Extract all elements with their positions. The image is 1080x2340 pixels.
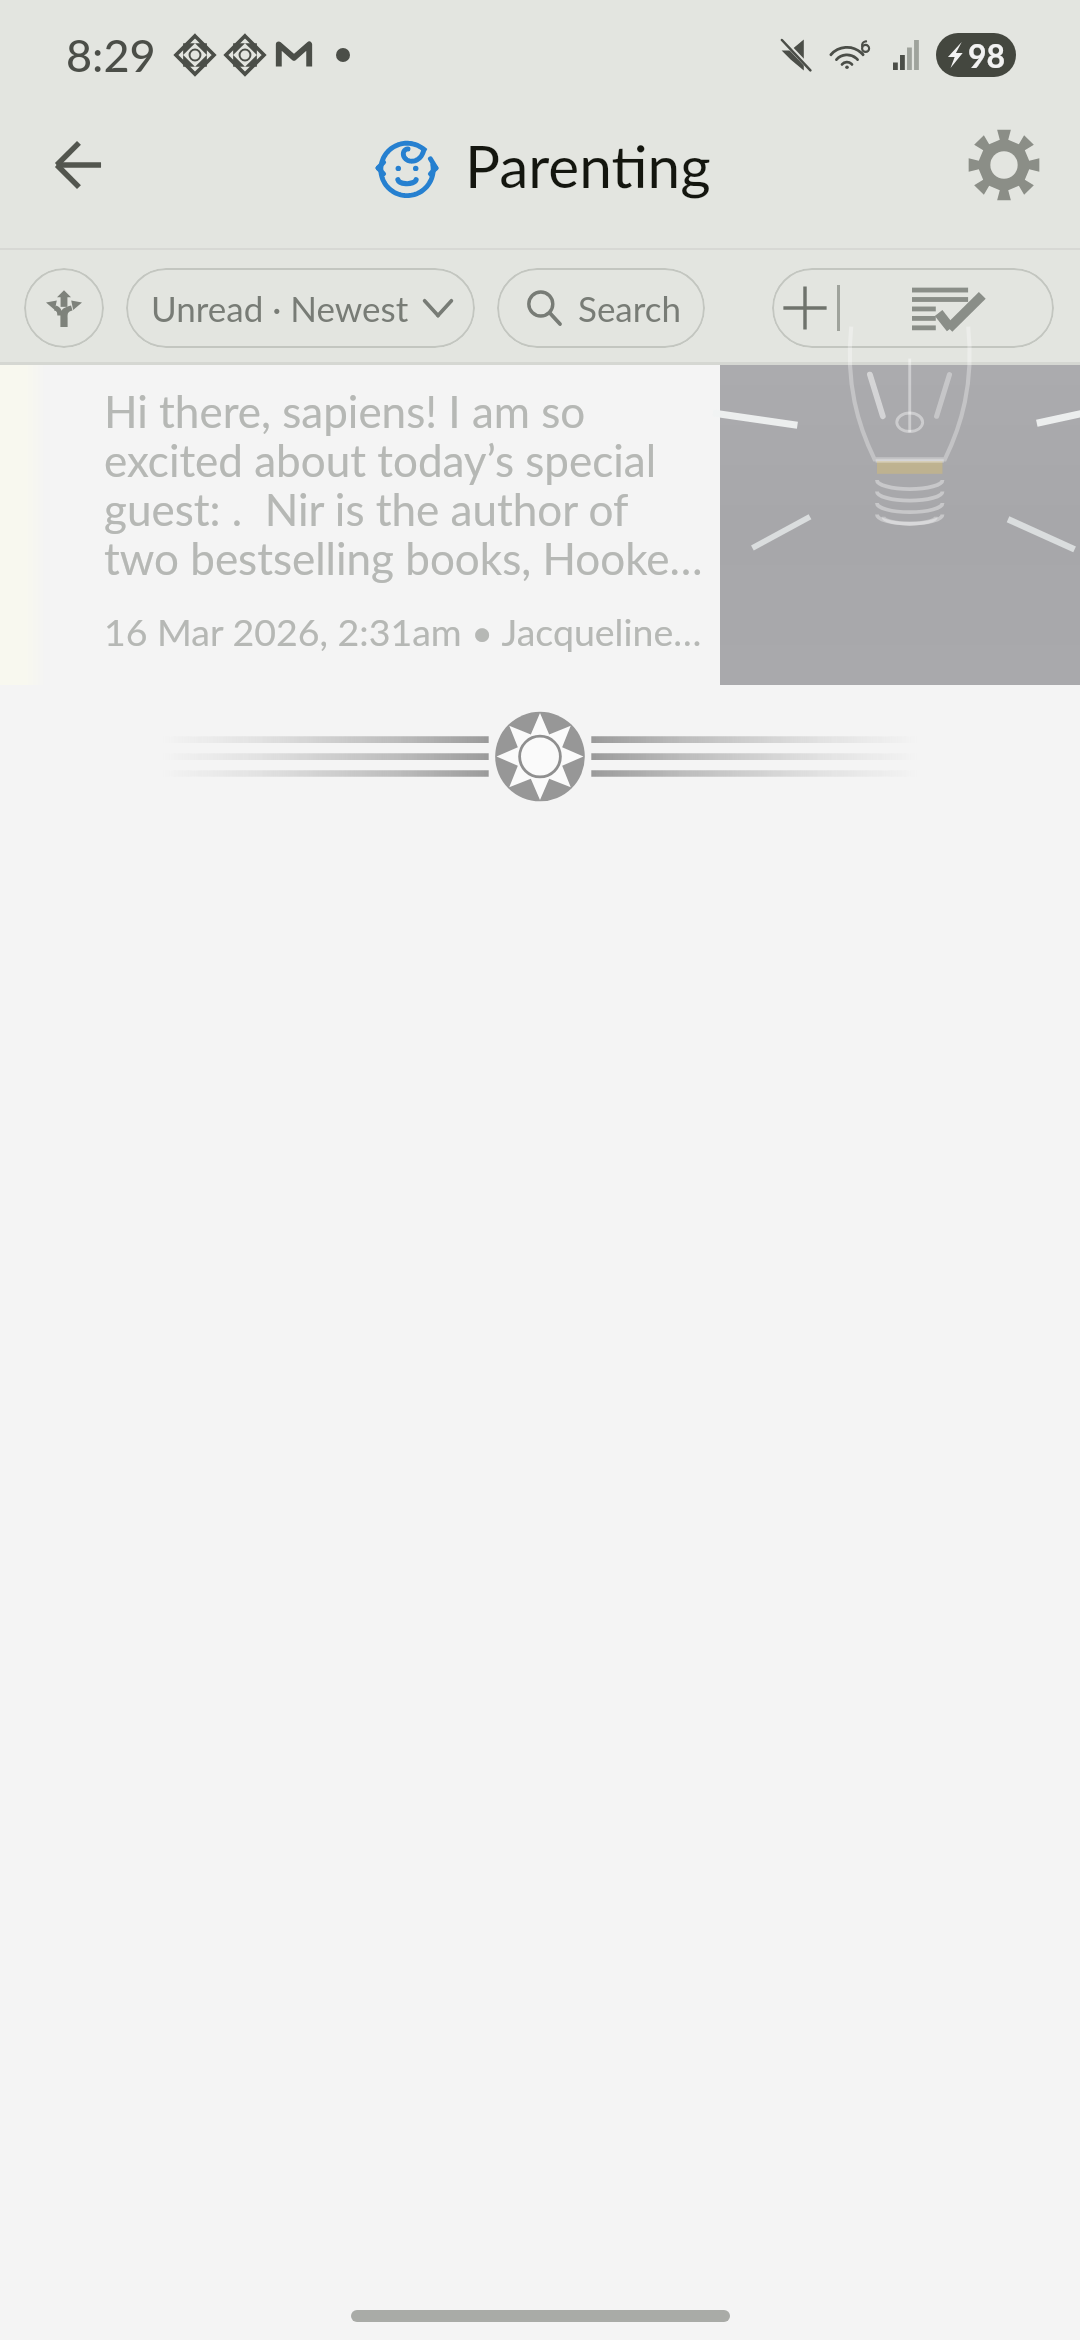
staticText: 16 Mar 2026, 2:31am • Jacqueline… bbox=[104, 609, 702, 654]
button[interactable]: Add feed bbox=[772, 268, 837, 348]
staticText: Unread · Newest bbox=[151, 287, 409, 329]
button[interactable]: Settings bbox=[928, 110, 1080, 220]
staticText: Hi there, sapiens! I am so excited about… bbox=[104, 385, 712, 585]
button[interactable]: Feed options bbox=[24, 268, 104, 348]
button[interactable]: Hi there, sapiens! I am so excited about… bbox=[0, 365, 1080, 685]
button[interactable]: Unread · Newest bbox=[126, 268, 475, 348]
staticText: 98 bbox=[968, 36, 1006, 74]
button[interactable]: Search bbox=[497, 268, 705, 348]
button[interactable]: Mark all read bbox=[840, 268, 1054, 348]
staticText: 8:29 bbox=[66, 28, 156, 82]
button[interactable]: Back bbox=[0, 110, 156, 220]
staticText: Search bbox=[578, 287, 682, 329]
staticText: Parenting bbox=[465, 130, 711, 200]
